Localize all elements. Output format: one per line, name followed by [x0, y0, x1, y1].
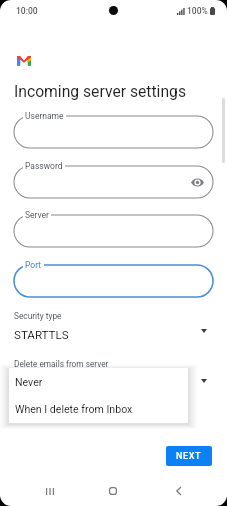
staticText: 10:00	[16, 6, 38, 16]
staticText: Security type	[14, 311, 62, 321]
staticText: Password	[25, 161, 63, 171]
button[interactable]: Home	[101, 479, 125, 503]
button[interactable]: Port	[14, 265, 213, 297]
staticText: Never	[15, 376, 43, 388]
staticText: 100%	[187, 6, 208, 16]
staticText: Port	[25, 260, 42, 270]
staticText: Username	[25, 111, 64, 121]
staticText: Incoming server settings	[14, 82, 186, 100]
staticText: Delete emails from server	[14, 359, 109, 369]
button[interactable]: When I delete from Inbox	[9, 395, 188, 423]
button[interactable]: Never	[9, 368, 188, 395]
button[interactable]: Recent apps	[38, 479, 62, 503]
button[interactable]: Password	[14, 166, 213, 198]
button[interactable]: Server	[14, 215, 213, 247]
button[interactable]: Username	[14, 116, 213, 148]
staticText: STARTTLS	[14, 328, 69, 342]
button[interactable]: NEXT	[166, 446, 212, 466]
other: Show password	[191, 178, 204, 187]
button[interactable]: Back	[166, 479, 190, 503]
staticText: NEXT	[176, 451, 202, 462]
staticText: Server	[25, 210, 49, 220]
staticText: When I delete from Inbox	[15, 403, 133, 415]
